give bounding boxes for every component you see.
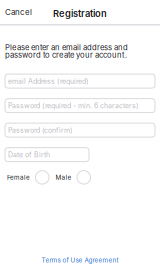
staticText: Password (confirm) (8, 126, 73, 134)
staticText: Cancel (5, 7, 32, 17)
button[interactable]: email Address (required) (5, 74, 155, 88)
button[interactable]: Male (55, 171, 90, 184)
button[interactable]: Password (confirm) (5, 123, 155, 137)
staticText: Terms of Use Agreement (41, 256, 118, 264)
button[interactable]: Cancel (0, 0, 37, 24)
button[interactable]: Female (7, 171, 49, 184)
button[interactable]: Password (required - min. 6 characters) (5, 99, 155, 113)
staticText: Female (7, 173, 30, 181)
staticText: Please enter an email address and passwo… (5, 44, 128, 59)
staticText: Date of Birth (8, 150, 50, 159)
staticText: Password (required - min. 6 characters) (8, 101, 139, 110)
staticText: email Address (required) (8, 77, 89, 85)
staticText: Male (55, 173, 71, 181)
button[interactable]: Terms of Use Agreement (41, 256, 118, 264)
button[interactable]: Date of Birth (5, 148, 89, 162)
staticText: Registration (53, 8, 107, 19)
